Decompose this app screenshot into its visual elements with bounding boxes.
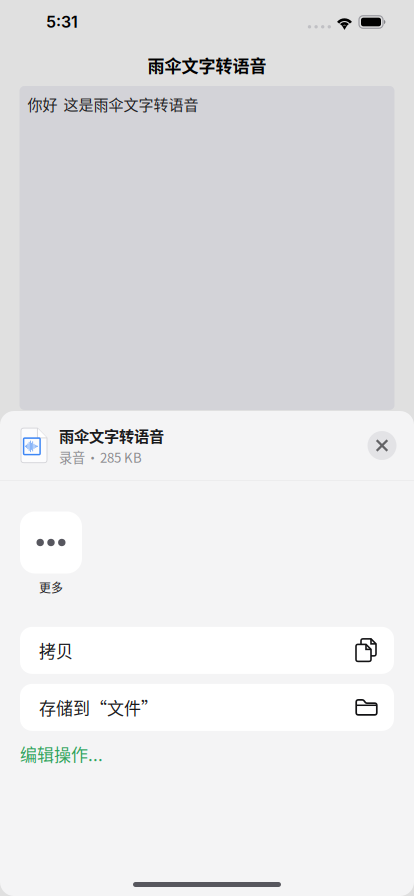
button[interactable]: 关闭 <box>364 427 400 463</box>
staticText: 5:31 <box>46 12 78 32</box>
staticText: 存储到“文件” <box>39 695 158 720</box>
button[interactable]: 更多 <box>20 511 82 596</box>
staticText: 拷贝 <box>39 638 73 663</box>
staticText: 雨伞文字转语音 <box>59 424 164 446</box>
staticText: 你好 这是雨伞文字转语音 <box>27 93 198 115</box>
button[interactable]: 编辑操作... <box>0 731 414 777</box>
staticText: 录音 · 285 KB <box>59 447 142 466</box>
staticText: 雨伞文字转语音 <box>147 53 266 77</box>
button[interactable]: 拷贝 <box>20 627 394 674</box>
button[interactable]: 存储到“文件” <box>20 684 394 731</box>
staticText: 编辑操作... <box>20 742 103 766</box>
staticText: 更多 <box>39 578 63 596</box>
